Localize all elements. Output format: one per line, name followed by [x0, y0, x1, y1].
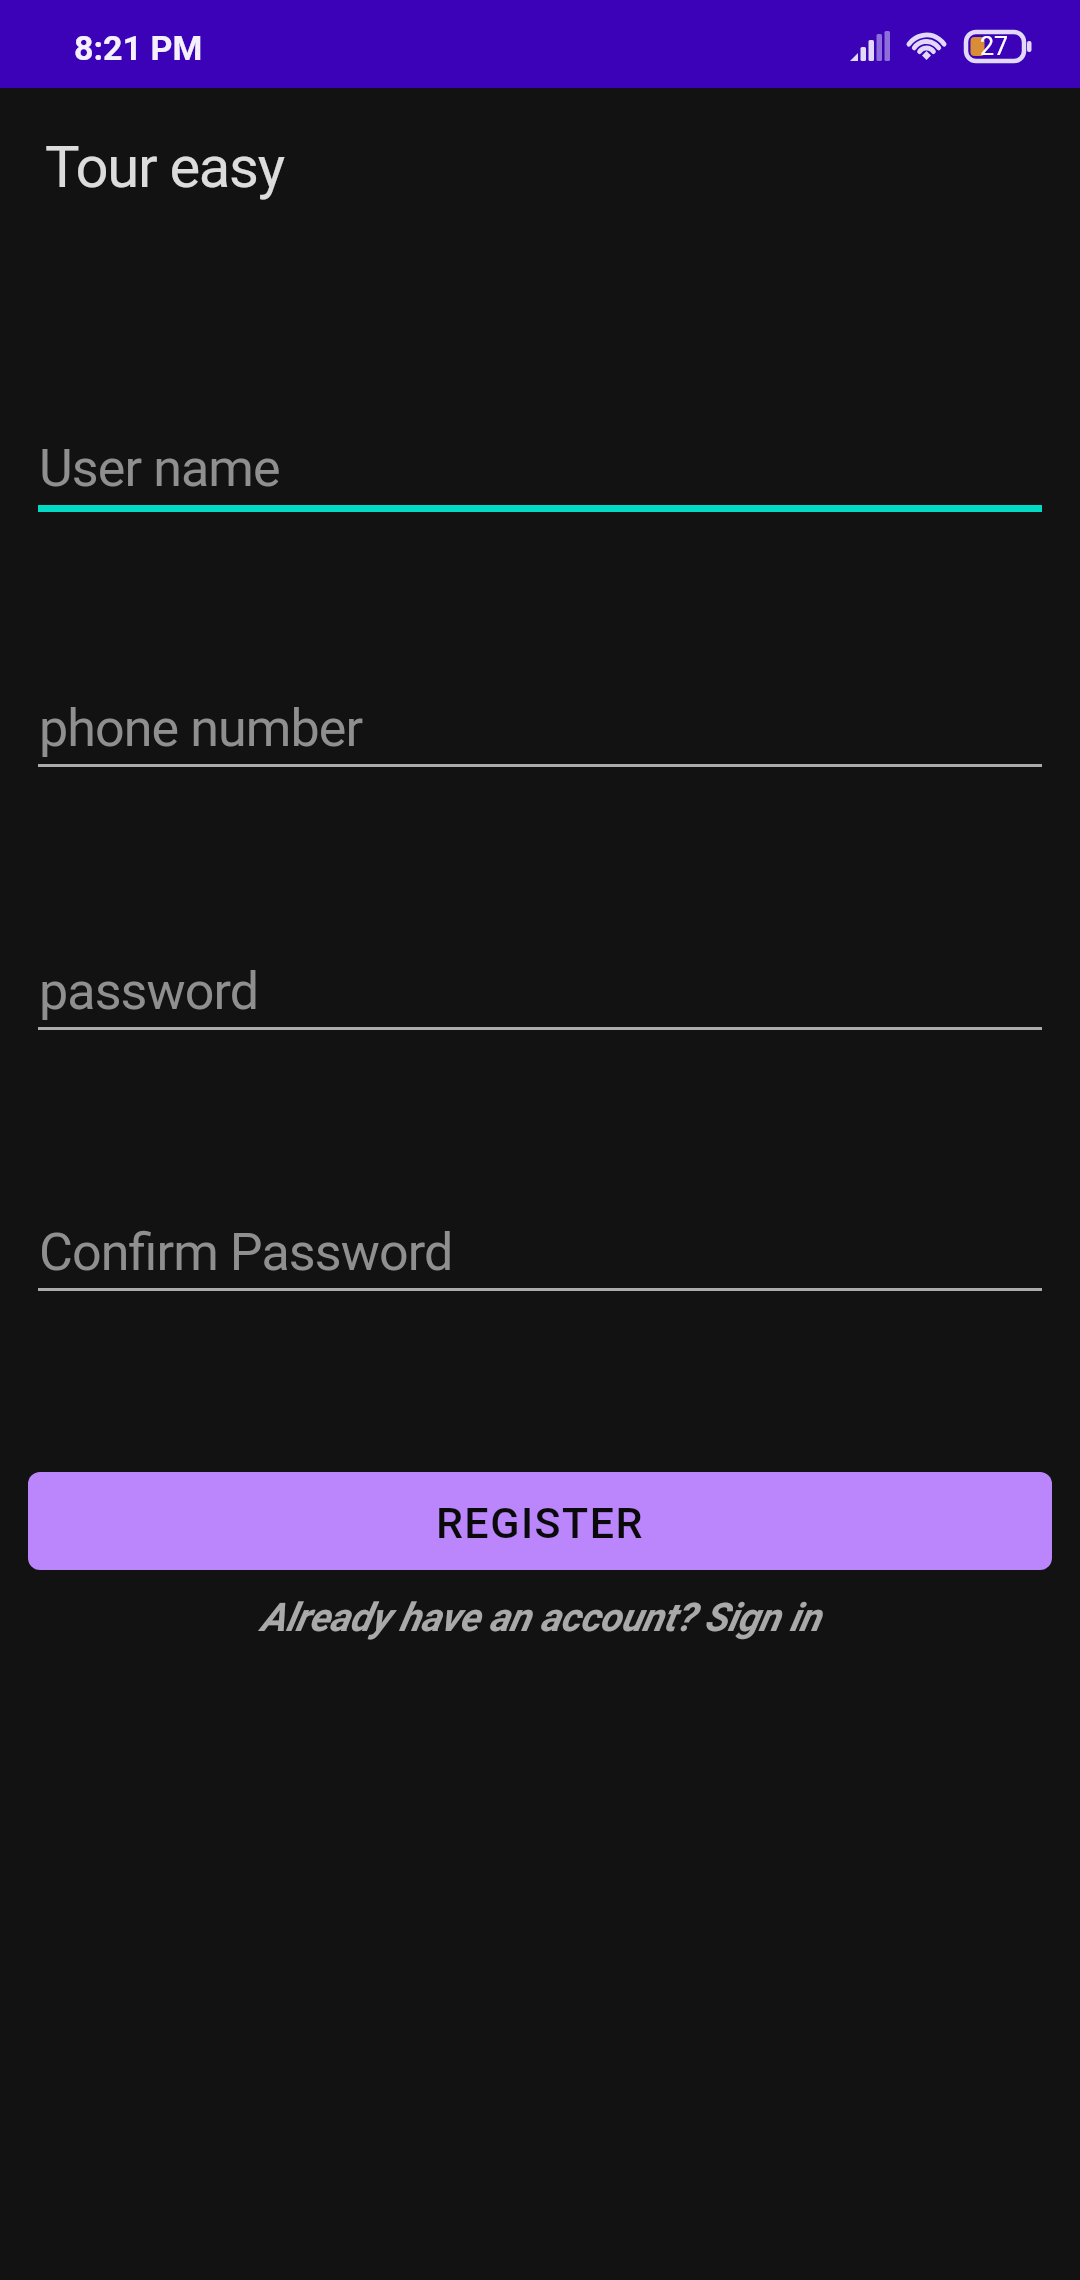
- staticText: 8:21 PM: [74, 28, 203, 68]
- staticText: password: [39, 961, 259, 1022]
- button[interactable]: password: [38, 943, 1042, 1040]
- staticText: phone number: [39, 698, 363, 759]
- staticText: Confirm Password: [39, 1222, 453, 1283]
- staticText: 27: [980, 32, 1009, 61]
- button[interactable]: User name: [38, 414, 1042, 522]
- button[interactable]: REGISTER: [28, 1472, 1052, 1570]
- staticText: Tour easy: [45, 133, 284, 201]
- staticText: REGISTER: [436, 1498, 644, 1548]
- staticText: User name: [39, 438, 280, 499]
- staticText: Already have an account? Sign in: [260, 1594, 821, 1640]
- button[interactable]: Already have an account? Sign in: [0, 1586, 1080, 1648]
- button[interactable]: Confirm Password: [38, 1204, 1042, 1301]
- button[interactable]: phone number: [38, 680, 1042, 777]
